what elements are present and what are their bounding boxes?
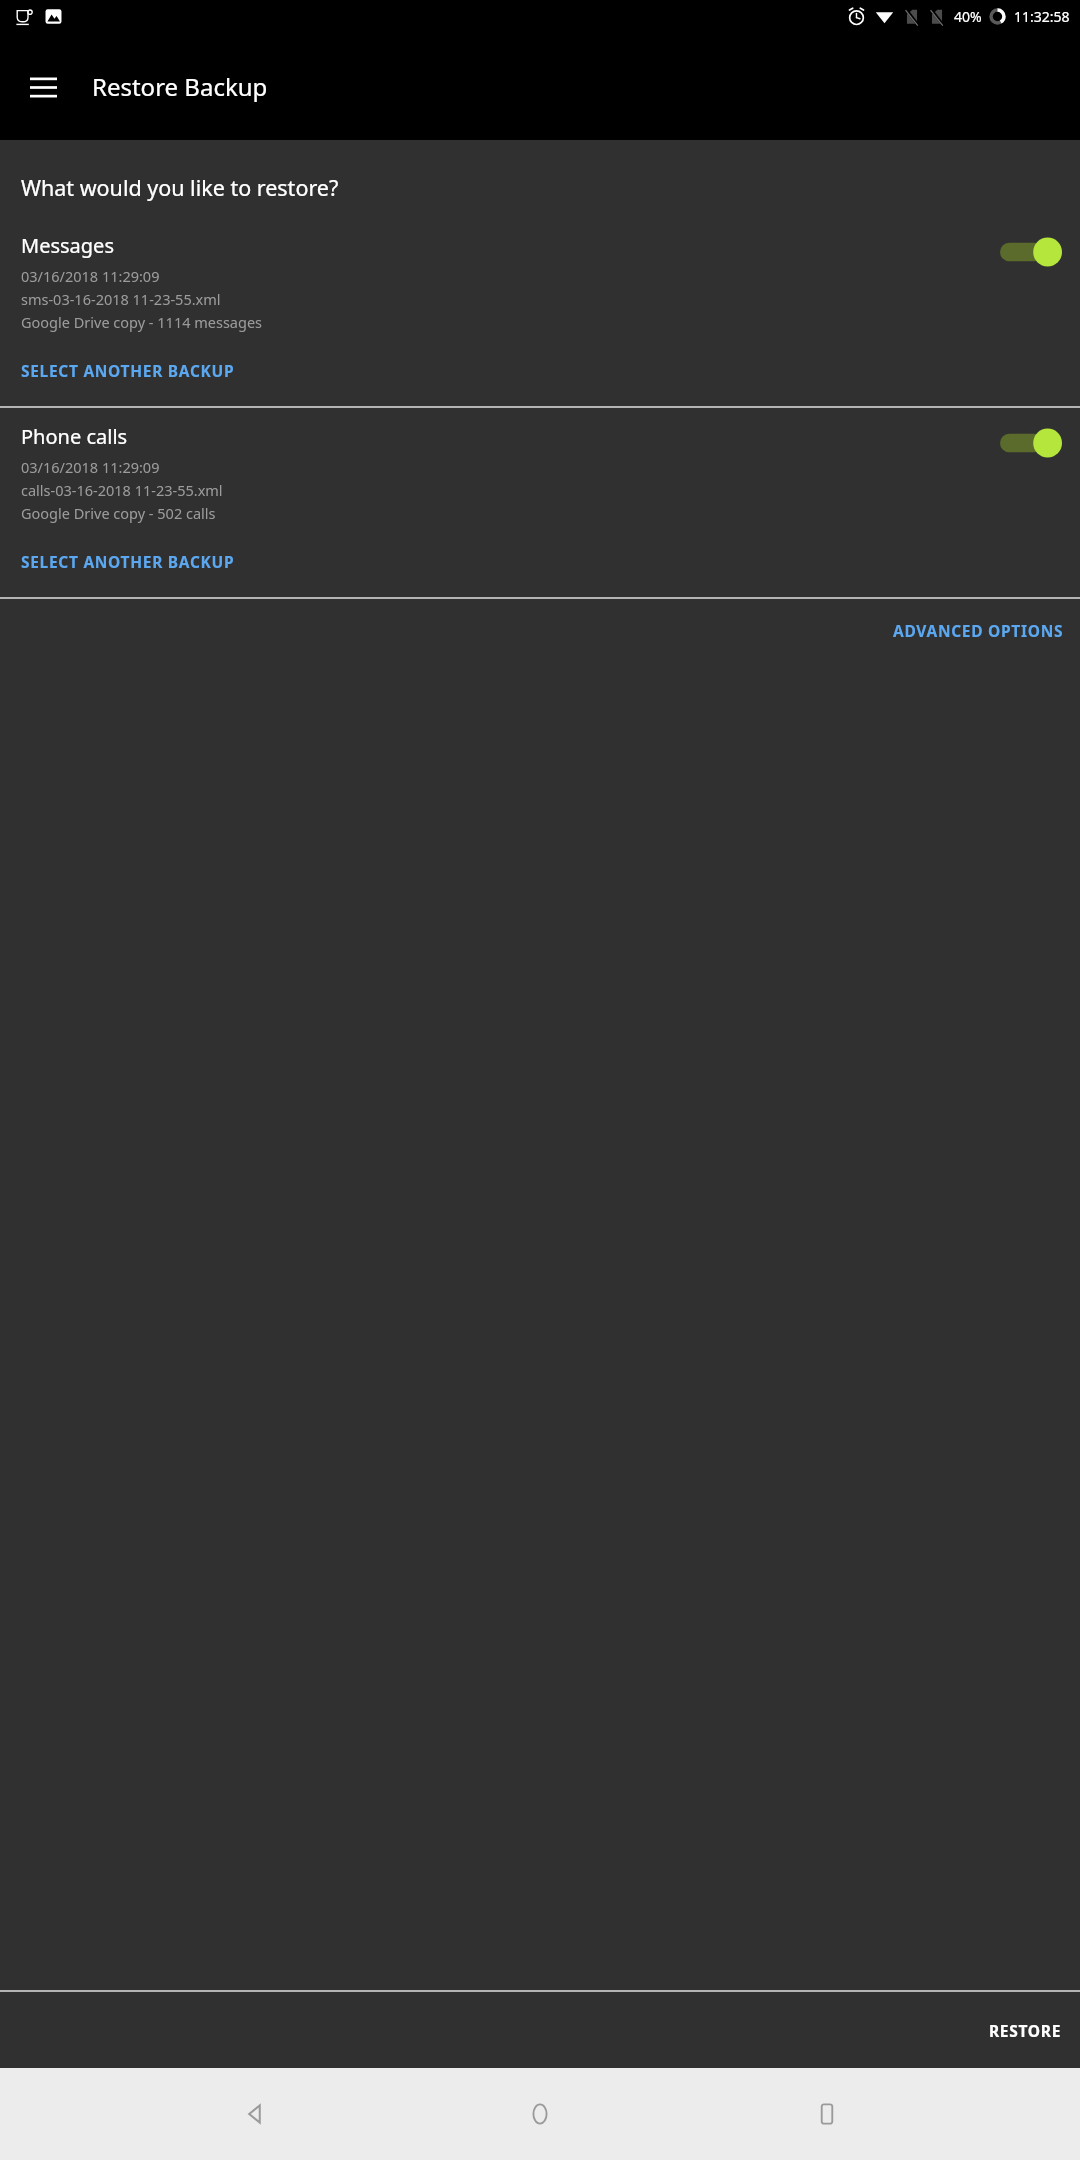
staticText: Google Drive copy - 502 calls: [21, 503, 216, 523]
staticText: What would you like to restore?: [21, 173, 339, 202]
staticText: 11:32:58: [1014, 7, 1070, 26]
staticText: SELECT ANOTHER BACKUP: [21, 551, 235, 572]
staticText: 03/16/2018 11:29:09: [21, 457, 160, 477]
button[interactable]: Messages: [0, 232, 1080, 332]
staticText: 40%: [954, 7, 982, 26]
staticText: sms-03-16-2018 11-23-55.xml: [21, 289, 221, 309]
button[interactable]: Home: [507, 2081, 573, 2147]
staticText: RESTORE: [989, 2020, 1062, 2041]
staticText: calls-03-16-2018 11-23-55.xml: [21, 480, 223, 500]
button[interactable]: Recent apps: [794, 2081, 860, 2147]
staticText: Google Drive copy - 1114 messages: [21, 312, 263, 332]
button[interactable]: Toggle Phone calls restore: [1000, 423, 1062, 463]
staticText: Messages: [21, 232, 114, 259]
button[interactable]: SELECT ANOTHER BACKUP: [5, 352, 251, 389]
staticText: 03/16/2018 11:29:09: [21, 266, 160, 286]
button[interactable]: Back: [221, 2081, 287, 2147]
button[interactable]: SELECT ANOTHER BACKUP: [5, 543, 251, 580]
button[interactable]: Toggle Messages restore: [1000, 232, 1062, 272]
button[interactable]: Phone calls: [0, 423, 1080, 523]
staticText: Phone calls: [21, 423, 128, 450]
button[interactable]: RESTORE: [971, 2006, 1080, 2055]
staticText: Restore Backup: [92, 70, 268, 103]
button[interactable]: Open navigation menu: [20, 64, 66, 110]
button[interactable]: ADVANCED OPTIONS: [877, 608, 1080, 653]
staticText: SELECT ANOTHER BACKUP: [21, 360, 235, 381]
staticText: ADVANCED OPTIONS: [893, 620, 1064, 641]
